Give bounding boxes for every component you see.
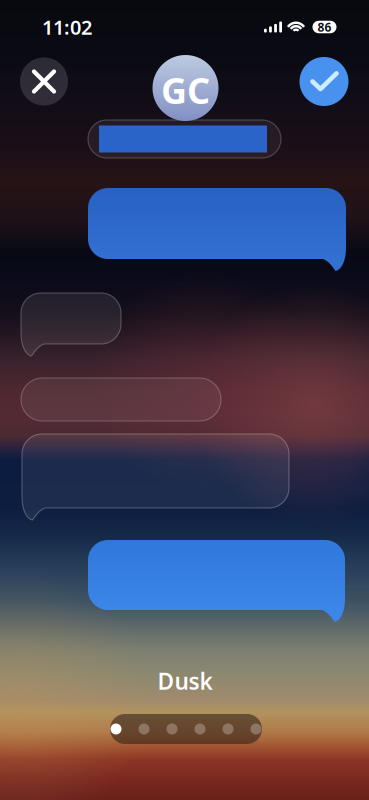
button[interactable]: Done [299, 57, 348, 106]
staticText: 86 [317, 19, 331, 35]
staticText: GC [161, 66, 210, 114]
button[interactable]: Close [20, 57, 68, 105]
staticText: Dusk [157, 666, 212, 696]
staticText: 11:02 [42, 14, 92, 40]
